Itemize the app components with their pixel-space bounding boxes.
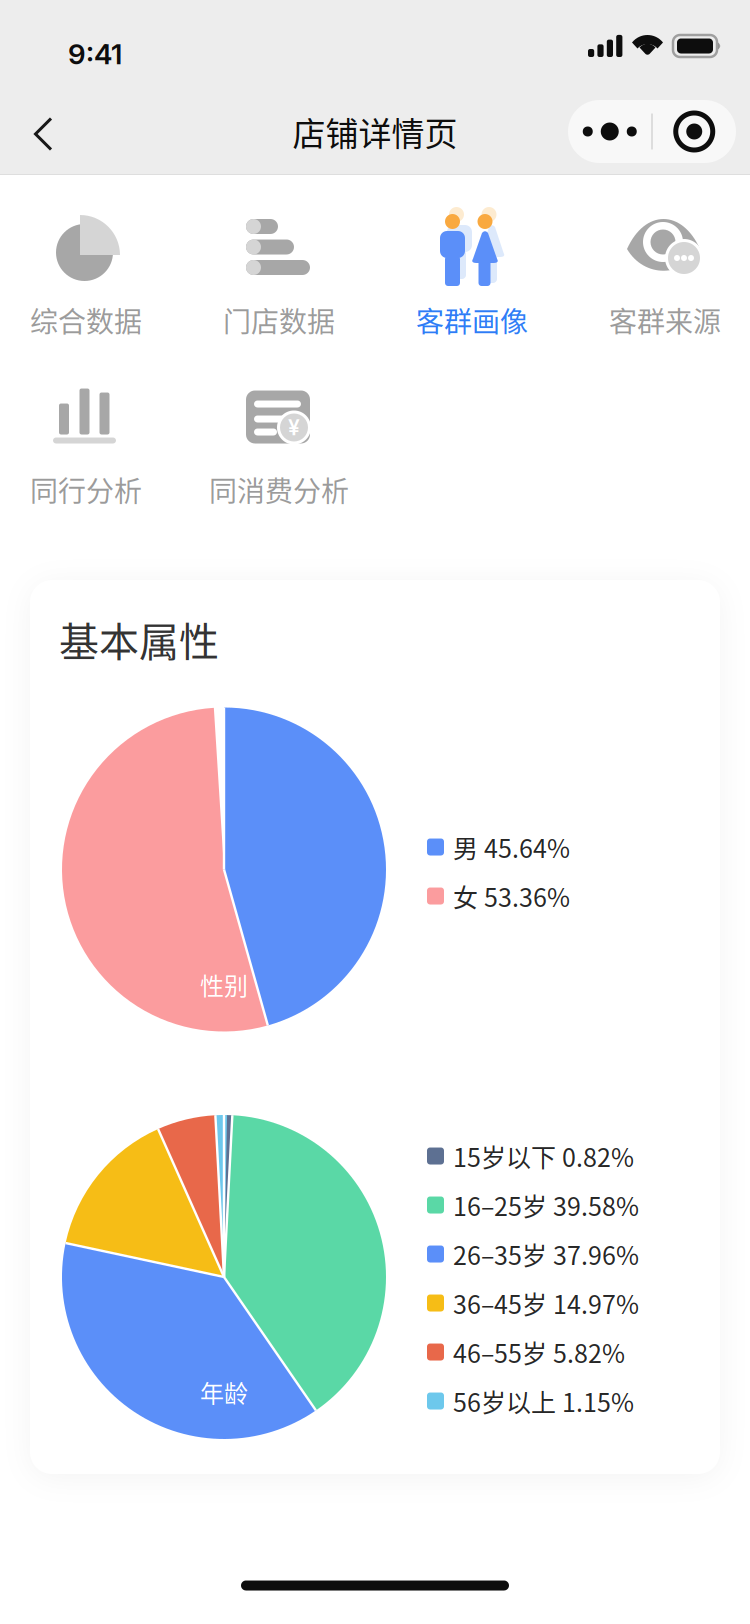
staticText: 9:41	[68, 37, 122, 71]
staticText: 店铺详情页	[292, 108, 457, 155]
button[interactable]: ¥	[182, 375, 375, 545]
staticText: 门店数据	[223, 300, 335, 340]
button[interactable]: 同行分析	[0, 375, 182, 545]
button[interactable]: Close	[653, 100, 736, 163]
button[interactable]: Back	[9, 97, 77, 171]
button[interactable]: 门店数据	[182, 206, 375, 375]
staticText: 性别	[200, 967, 248, 1002]
staticText: 年龄	[200, 1375, 248, 1409]
button[interactable]: 客群来源	[568, 206, 750, 375]
staticText: 46–55岁 5.82%	[453, 1334, 625, 1370]
staticText: 同消费分析	[209, 469, 349, 510]
staticText: 36–45岁 14.97%	[453, 1285, 639, 1321]
staticText: 客群画像	[416, 300, 528, 340]
staticText: 16–25岁 39.58%	[453, 1187, 639, 1223]
staticText: 同行分析	[30, 469, 142, 510]
staticText: 56岁以上 1.15%	[453, 1383, 634, 1419]
staticText: 26–35岁 37.96%	[453, 1236, 639, 1272]
staticText: 客群来源	[609, 300, 721, 340]
staticText: 15岁以下 0.82%	[453, 1138, 634, 1174]
staticText: 综合数据	[30, 300, 142, 340]
staticText: ¥	[288, 415, 300, 440]
button[interactable]: 综合数据	[0, 206, 182, 375]
staticText: 男 45.64%	[453, 829, 570, 865]
staticText: 女 53.36%	[453, 878, 570, 914]
button[interactable]: More	[568, 100, 651, 163]
button[interactable]: 客群画像	[375, 206, 568, 375]
staticText: 基本属性	[59, 610, 219, 668]
